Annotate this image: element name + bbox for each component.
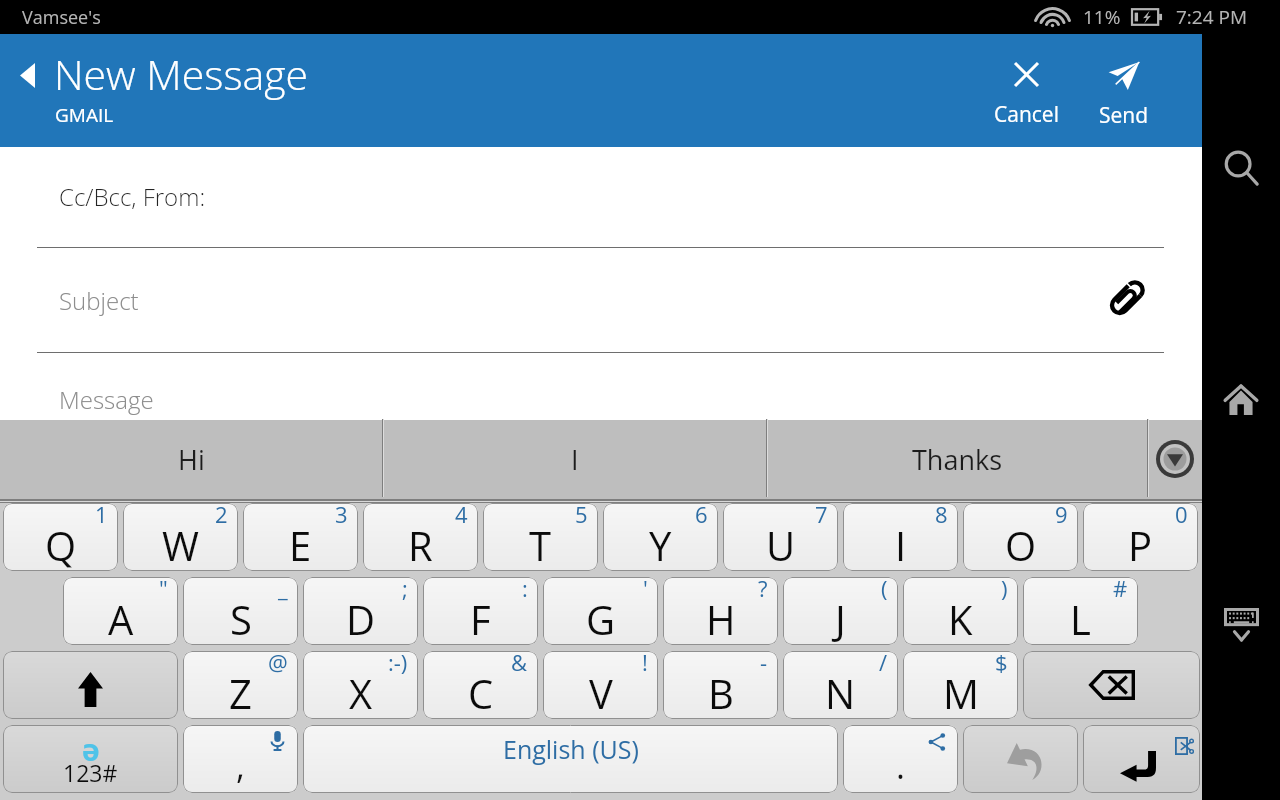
- button[interactable]: Subject: [0, 248, 1202, 352]
- button[interactable]: Shift: [3, 651, 178, 719]
- button[interactable]: Cancel: [983, 44, 1069, 147]
- button[interactable]: L: [1023, 577, 1138, 645]
- staticText: C: [468, 666, 494, 719]
- staticText: ?: [758, 577, 768, 603]
- button[interactable]: K: [903, 577, 1018, 645]
- button[interactable]: Attach file: [1098, 275, 1150, 327]
- staticText: 4: [455, 503, 468, 529]
- staticText: -: [760, 651, 768, 677]
- staticText: P: [1128, 518, 1153, 571]
- staticText: F: [470, 592, 491, 645]
- staticText: Thanks: [912, 441, 1003, 478]
- staticText: 7:24 PM: [1176, 4, 1248, 30]
- staticText: .: [896, 743, 905, 789]
- button[interactable]: T: [483, 503, 598, 571]
- staticText: I: [571, 441, 579, 478]
- staticText: English (US): [503, 732, 639, 766]
- staticText: ə: [82, 729, 100, 770]
- staticText: GMAIL: [55, 102, 114, 128]
- button[interactable]: Backspace: [1023, 651, 1200, 719]
- staticText: Cancel: [994, 100, 1059, 129]
- staticText: D: [346, 592, 376, 645]
- staticText: @: [268, 651, 288, 677]
- button[interactable]: B: [663, 651, 778, 719]
- staticText: R: [408, 518, 433, 571]
- button[interactable]: Comma: [183, 725, 298, 793]
- button[interactable]: Home: [1202, 370, 1280, 430]
- button[interactable]: I: [843, 503, 958, 571]
- button[interactable]: Cc/Bcc, From:: [0, 145, 1202, 247]
- staticText: K: [948, 592, 973, 645]
- staticText: ): [1001, 577, 1008, 603]
- button[interactable]: Enter: [1083, 725, 1200, 793]
- button[interactable]: P: [1083, 503, 1198, 571]
- staticText: S: [230, 592, 252, 645]
- staticText: 7: [815, 503, 828, 529]
- staticText: Cc/Bcc, From:: [59, 180, 206, 213]
- staticText: 2: [215, 503, 228, 529]
- staticText: Q: [45, 518, 77, 571]
- button[interactable]: Space: [303, 725, 838, 793]
- staticText: Vamsee's: [22, 5, 101, 30]
- button[interactable]: Hide keyboard: [1202, 596, 1280, 652]
- staticText: ;: [402, 577, 408, 603]
- button[interactable]: C: [423, 651, 538, 719]
- button[interactable]: Back: [4, 52, 50, 98]
- button[interactable]: S: [183, 577, 298, 645]
- staticText: G: [586, 592, 616, 645]
- staticText: $: [995, 651, 1008, 677]
- button[interactable]: F: [423, 577, 538, 645]
- staticText: N: [825, 666, 856, 719]
- staticText: _: [278, 577, 288, 603]
- staticText: 11%: [1083, 4, 1121, 30]
- staticText: ": [159, 577, 168, 603]
- button[interactable]: More suggestions: [1148, 421, 1202, 497]
- button[interactable]: Z: [183, 651, 298, 719]
- staticText: #: [1113, 577, 1128, 603]
- button[interactable]: Send: [1081, 44, 1167, 147]
- button[interactable]: N: [783, 651, 898, 719]
- staticText: Z: [229, 666, 252, 719]
- staticText: 9: [1055, 503, 1068, 529]
- button[interactable]: V: [543, 651, 658, 719]
- staticText: M: [943, 666, 979, 719]
- button[interactable]: X: [303, 651, 418, 719]
- button[interactable]: I: [384, 420, 766, 499]
- button[interactable]: E: [243, 503, 358, 571]
- staticText: H: [706, 592, 736, 645]
- staticText: /: [879, 651, 888, 677]
- button[interactable]: Hi: [0, 420, 382, 499]
- staticText: V: [589, 666, 613, 719]
- button[interactable]: W: [123, 503, 238, 571]
- staticText: &: [511, 651, 528, 677]
- button[interactable]: Search: [1202, 138, 1280, 200]
- button[interactable]: H: [663, 577, 778, 645]
- button[interactable]: M: [903, 651, 1018, 719]
- staticText: T: [529, 518, 552, 571]
- staticText: I: [895, 518, 907, 571]
- button[interactable]: J: [783, 577, 898, 645]
- staticText: New Message: [54, 46, 309, 102]
- button[interactable]: Thanks: [768, 420, 1147, 499]
- staticText: 0: [1175, 503, 1188, 529]
- button[interactable]: Message: [0, 353, 1202, 420]
- button[interactable]: Symbols: [3, 725, 178, 793]
- staticText: Message: [59, 383, 154, 416]
- button[interactable]: G: [543, 577, 658, 645]
- button[interactable]: R: [363, 503, 478, 571]
- button[interactable]: U: [723, 503, 838, 571]
- staticText: O: [1005, 518, 1037, 571]
- staticText: 1: [95, 503, 108, 529]
- staticText: 8: [935, 503, 948, 529]
- button[interactable]: Undo: [963, 725, 1078, 793]
- button[interactable]: Period: [843, 725, 958, 793]
- button[interactable]: O: [963, 503, 1078, 571]
- staticText: Hi: [178, 441, 205, 478]
- staticText: Subject: [59, 284, 139, 317]
- button[interactable]: D: [303, 577, 418, 645]
- button[interactable]: Y: [603, 503, 718, 571]
- staticText: W: [162, 518, 199, 571]
- staticText: 6: [695, 503, 708, 529]
- button[interactable]: A: [63, 577, 178, 645]
- button[interactable]: Q: [3, 503, 118, 571]
